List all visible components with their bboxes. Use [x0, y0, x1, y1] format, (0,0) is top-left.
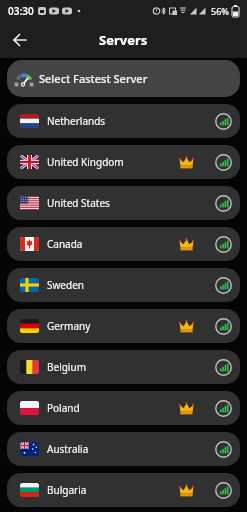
button[interactable]: Belgium — [7, 350, 240, 384]
staticText: Bulgaria — [47, 483, 87, 497]
staticText: United Kingdom — [47, 155, 124, 169]
button[interactable]: United Kingdom — [7, 145, 240, 179]
button[interactable]: Bulgaria — [7, 473, 240, 507]
staticText: Canada — [47, 237, 83, 251]
staticText: 56% — [211, 5, 229, 17]
button[interactable]: Poland — [7, 391, 240, 425]
staticText: Australia — [47, 442, 89, 456]
button[interactable] — [10, 30, 30, 50]
staticText: Netherlands — [47, 114, 106, 128]
staticText: Select Fastest Server — [39, 71, 148, 86]
staticText: Belgium — [47, 360, 86, 374]
button[interactable]: Sweden — [7, 268, 240, 302]
staticText: Servers — [99, 31, 148, 49]
button[interactable]: Netherlands — [7, 104, 240, 138]
button[interactable]: Australia — [7, 432, 240, 466]
button[interactable]: Select Fastest Server — [7, 60, 240, 97]
button[interactable]: United States — [7, 186, 240, 220]
button[interactable]: Canada — [7, 227, 240, 261]
staticText: 03:30 — [8, 4, 34, 18]
staticText: Poland — [47, 401, 80, 415]
button[interactable]: Germany — [7, 309, 240, 343]
staticText: United States — [47, 196, 110, 210]
staticText: Sweden — [47, 278, 84, 292]
staticText: Germany — [47, 319, 91, 333]
